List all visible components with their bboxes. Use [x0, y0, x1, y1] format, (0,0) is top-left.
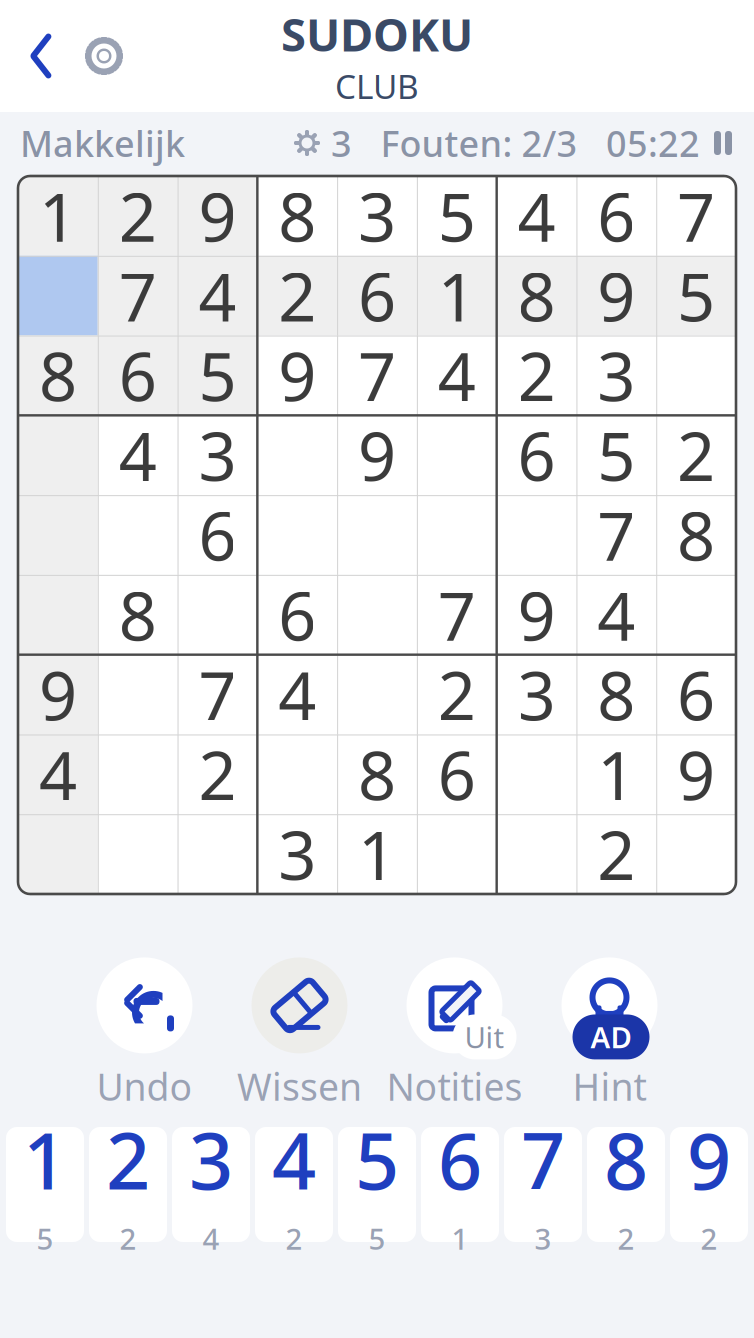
staticText: 6	[278, 570, 316, 659]
button[interactable]: 2	[89, 1127, 167, 1242]
staticText: 8	[278, 172, 316, 260]
staticText: 9	[358, 411, 396, 499]
staticText: CLUB	[335, 64, 419, 108]
staticText: 3	[278, 810, 316, 898]
staticText: 3	[518, 650, 556, 739]
staticText: 7	[438, 570, 476, 659]
button[interactable]: 8	[587, 1127, 665, 1242]
staticText: 3	[189, 1108, 233, 1211]
staticText: 6	[597, 172, 635, 260]
staticText: 5	[438, 172, 476, 260]
staticText: 4	[518, 172, 556, 260]
staticText: 2	[518, 331, 556, 420]
staticText: 4	[272, 1108, 316, 1211]
staticText: 2	[119, 1219, 136, 1258]
staticText: 2	[106, 1108, 150, 1211]
staticText: 6	[438, 1108, 482, 1211]
staticText: 3	[331, 119, 352, 167]
button[interactable]: 3	[172, 1127, 250, 1242]
staticText: 4	[198, 251, 236, 340]
staticText: 6	[518, 411, 556, 499]
staticText: 1	[39, 172, 77, 260]
staticText: 5	[677, 251, 715, 340]
staticText: Undo	[96, 1061, 192, 1111]
staticText: 4	[202, 1219, 219, 1258]
staticText: Wissen	[237, 1061, 362, 1111]
button[interactable]: 5	[338, 1127, 416, 1242]
staticText: 2	[278, 251, 316, 340]
button[interactable]: 4	[255, 1127, 333, 1242]
staticText: 9	[597, 251, 635, 340]
button[interactable]: 7	[504, 1127, 582, 1242]
button[interactable]: Uit	[377, 955, 532, 1111]
staticText: 9	[198, 172, 236, 260]
staticText: 3	[534, 1219, 551, 1258]
button[interactable]: Back	[10, 23, 72, 89]
staticText: 7	[677, 172, 715, 260]
staticText: 05:22	[606, 119, 700, 167]
staticText: 3	[198, 411, 236, 499]
staticText: 8	[358, 730, 396, 819]
staticText: 5	[368, 1219, 385, 1258]
button[interactable]: Pause	[710, 127, 736, 159]
staticText: 1	[358, 810, 396, 898]
staticText: 6	[358, 251, 396, 340]
staticText: 3	[358, 172, 396, 260]
staticText: 7	[198, 650, 236, 739]
staticText: 9	[677, 730, 715, 819]
staticText: 8	[119, 570, 157, 659]
staticText: 5	[36, 1219, 53, 1258]
staticText: 6	[198, 491, 236, 579]
staticText: AD	[590, 1017, 631, 1056]
staticText: 7	[597, 491, 635, 579]
staticText: 6	[438, 730, 476, 819]
staticText: 4	[278, 650, 316, 739]
button[interactable]: AD	[532, 955, 687, 1111]
staticText: 2	[677, 411, 715, 499]
staticText: Makkelijk	[20, 119, 185, 167]
staticText: 5	[198, 331, 236, 420]
staticText: 2	[438, 650, 476, 739]
button[interactable]: 9	[670, 1127, 748, 1242]
staticText: 8	[518, 251, 556, 340]
staticText: 7	[119, 251, 157, 340]
staticText: 2	[119, 172, 157, 260]
staticText: 4	[597, 570, 635, 659]
staticText: 1	[451, 1219, 468, 1258]
button[interactable]: 6	[421, 1127, 499, 1242]
staticText: 9	[39, 650, 77, 739]
staticText: 2	[198, 730, 236, 819]
button[interactable]: Settings	[72, 28, 136, 84]
staticText: SUDOKU	[281, 4, 473, 64]
staticText: 8	[604, 1108, 648, 1211]
button[interactable]: Undo	[67, 955, 222, 1111]
staticText: 2	[700, 1219, 717, 1258]
staticText: 9	[278, 331, 316, 420]
button[interactable]: 1	[6, 1127, 84, 1242]
staticText: 8	[39, 331, 77, 420]
staticText: 6	[677, 650, 715, 739]
staticText: Hint	[572, 1061, 646, 1111]
staticText: 7	[358, 331, 396, 420]
staticText: 8	[597, 650, 635, 739]
staticText: Notities	[386, 1061, 522, 1111]
staticText: 1	[23, 1108, 67, 1211]
staticText: 7	[521, 1108, 565, 1211]
staticText: 1	[597, 730, 635, 819]
staticText: 2	[597, 810, 635, 898]
staticText: 4	[119, 411, 157, 499]
staticText: 5	[355, 1108, 399, 1211]
staticText: 9	[687, 1108, 731, 1211]
button[interactable]: Wissen	[222, 955, 377, 1111]
staticText: Fouten: 2/3	[380, 119, 577, 167]
staticText: 9	[518, 570, 556, 659]
staticText: 1	[438, 251, 476, 340]
staticText: 8	[677, 491, 715, 579]
staticText: 4	[39, 730, 77, 819]
staticText: 2	[617, 1219, 634, 1258]
staticText: 3	[597, 331, 635, 420]
staticText: 6	[119, 331, 157, 420]
staticText: Uit	[464, 1017, 504, 1056]
staticText: 2	[285, 1219, 302, 1258]
staticText: 5	[597, 411, 635, 499]
